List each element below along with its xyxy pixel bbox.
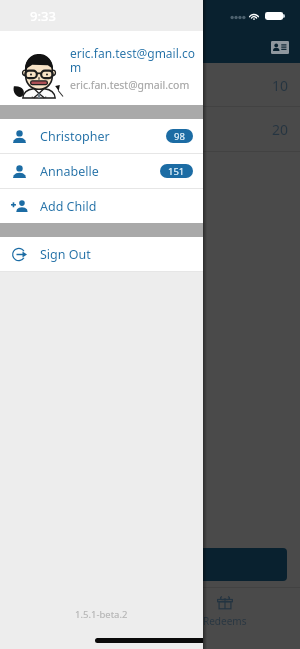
staticText: 151 [168,165,185,178]
staticText: 20 [272,120,289,139]
button[interactable]: Add Child [0,189,203,223]
staticText: eric.fan.test@gmail.com [70,45,199,76]
button[interactable] [13,548,287,581]
staticText: Christopher [40,128,110,145]
button[interactable]: 10 [0,63,300,107]
button[interactable]: eric.fan.test@gmail.com [0,31,203,105]
button[interactable]: Contact card [264,33,295,61]
button[interactable]: Redeems [150,588,300,649]
staticText: Add Child [40,198,97,215]
button[interactable]: 20 [0,107,300,152]
staticText: Redeems [203,614,247,628]
button[interactable]: Christopher [0,119,203,153]
button[interactable]: Sign Out [0,237,203,271]
button[interactable]: Annabelle [0,154,203,188]
staticText: 1.5.1-beta.2 [75,608,128,621]
staticText: 9:33 [30,7,56,25]
staticText: 10 [272,76,289,95]
staticText: Sign Out [40,246,91,263]
staticText: eric.fan.test@gmail.com [70,78,190,92]
staticText: Annabelle [40,163,99,180]
staticText: 98 [174,130,185,143]
